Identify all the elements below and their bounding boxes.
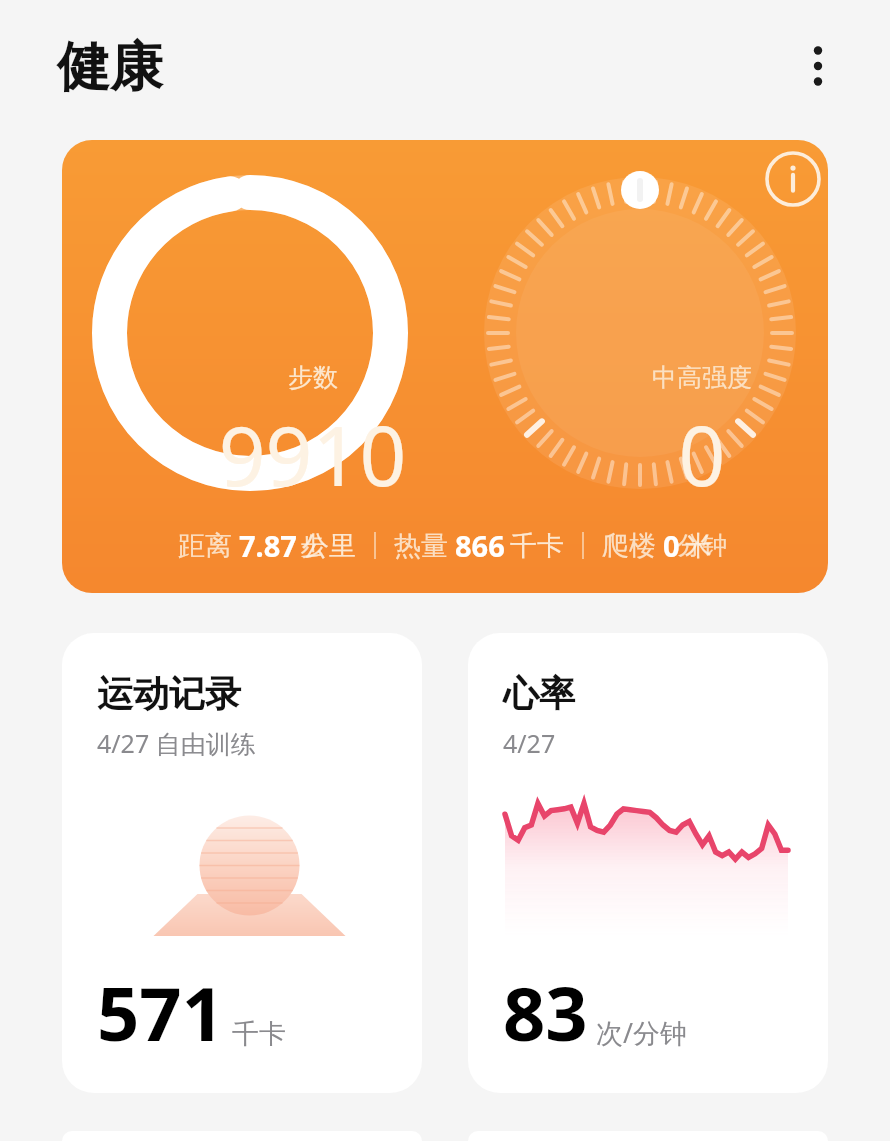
staticText: 中高强度 <box>577 362 827 393</box>
staticText: 571 <box>97 962 224 1063</box>
staticText: 热量 <box>394 529 448 563</box>
staticText: 83 <box>503 962 588 1063</box>
staticText: 心率 <box>503 671 575 716</box>
staticText: 爬楼 <box>602 529 656 563</box>
button[interactable]: Information <box>762 148 824 210</box>
staticText: 4/27 <box>503 726 556 760</box>
staticText: 运动记录 <box>97 671 241 716</box>
staticText: 千卡 <box>232 1017 286 1051</box>
staticText: 米 <box>685 529 712 563</box>
staticText: 步数 <box>288 362 338 393</box>
staticText: 公里 <box>302 529 356 563</box>
staticText: 4/27 自由训练 <box>97 726 256 760</box>
staticText: 次/分钟 <box>596 1014 688 1051</box>
staticText: 距离 <box>178 529 232 563</box>
staticText: 0 <box>577 398 827 510</box>
staticText: 866 <box>455 526 505 565</box>
button[interactable]: More options <box>792 40 844 92</box>
button[interactable]: 心率 <box>468 633 828 1093</box>
staticText: 步 <box>250 530 375 561</box>
staticText: 0 <box>663 526 680 565</box>
staticText: 健康 <box>57 34 163 101</box>
staticText: 9910 <box>166 398 459 510</box>
staticText: 分钟 <box>577 530 827 561</box>
staticText: 千卡 <box>510 529 564 563</box>
button[interactable]: 运动记录 <box>62 633 422 1093</box>
button[interactable]: 步数 <box>62 140 828 593</box>
staticText: 7.87 <box>239 526 297 565</box>
